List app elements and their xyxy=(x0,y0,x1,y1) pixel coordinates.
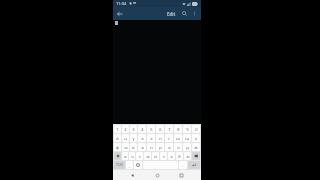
staticText: 7 xyxy=(168,127,171,132)
staticText: 2 xyxy=(124,127,127,132)
staticText: ь xyxy=(170,154,173,159)
staticText: ю xyxy=(186,154,190,159)
staticText: н xyxy=(159,136,162,141)
button[interactable]: б xyxy=(176,152,183,160)
staticText: т xyxy=(163,154,165,159)
button[interactable]: 3 xyxy=(130,125,137,133)
staticText: ы xyxy=(124,145,128,150)
button[interactable]: л xyxy=(174,143,182,151)
button[interactable]: к xyxy=(138,134,146,142)
staticText: м xyxy=(146,154,150,159)
button[interactable]: Edit xyxy=(165,10,178,18)
button[interactable]: 0 xyxy=(192,125,200,133)
button[interactable]: ф xyxy=(114,143,121,151)
button[interactable]: ж xyxy=(192,143,200,151)
staticText: ш xyxy=(176,136,180,141)
button[interactable]: Enter xyxy=(188,161,200,169)
button[interactable]: 2 xyxy=(122,125,129,133)
button[interactable]: 9 xyxy=(183,125,191,133)
staticText: ч xyxy=(131,154,134,159)
button[interactable]: 6 xyxy=(156,125,164,133)
staticText: 5 xyxy=(150,127,153,132)
button[interactable]: Comma xyxy=(126,161,133,169)
staticText: я xyxy=(124,154,127,159)
button[interactable]: Period xyxy=(179,161,187,169)
staticText: а xyxy=(141,145,144,150)
button[interactable]: т xyxy=(160,152,167,160)
button[interactable]: р xyxy=(156,143,164,151)
button[interactable]: ?123 xyxy=(114,161,125,169)
staticText: 4 xyxy=(141,127,144,132)
staticText: д xyxy=(186,145,189,150)
staticText: у xyxy=(132,136,135,141)
staticText: п xyxy=(150,145,153,150)
button[interactable]: Recent apps xyxy=(177,171,186,180)
button[interactable]: с xyxy=(136,152,143,160)
staticText: , xyxy=(129,163,131,168)
button[interactable]: й xyxy=(114,134,121,142)
button[interactable]: з xyxy=(192,134,200,142)
staticText: 8 xyxy=(177,127,180,132)
button[interactable]: Back xyxy=(115,9,125,19)
button[interactable]: Shift xyxy=(114,152,121,160)
staticText: е xyxy=(150,136,153,141)
button[interactable]: 7 xyxy=(165,125,173,133)
staticText: р xyxy=(159,145,162,150)
button[interactable]: а xyxy=(138,143,146,151)
staticText: 9 xyxy=(186,127,189,132)
button[interactable]: о xyxy=(165,143,173,151)
staticText: ц xyxy=(124,136,127,141)
staticText: к xyxy=(141,136,144,141)
staticText: й xyxy=(116,136,119,141)
staticText: 6 xyxy=(159,127,162,132)
staticText: щ xyxy=(185,136,189,141)
button[interactable]: Back xyxy=(128,171,137,180)
staticText: л xyxy=(177,145,180,150)
button[interactable]: Language xyxy=(134,161,142,169)
button[interactable]: я xyxy=(122,152,128,160)
button[interactable]: More options xyxy=(190,9,199,18)
button[interactable]: 5 xyxy=(147,125,155,133)
staticText: г xyxy=(168,136,170,141)
button[interactable]: Backspace xyxy=(192,152,200,160)
staticText: 0 xyxy=(195,127,198,132)
button[interactable]: ь xyxy=(168,152,175,160)
button[interactable]: ч xyxy=(129,152,135,160)
staticText: в xyxy=(132,145,135,150)
button[interactable]: н xyxy=(156,134,164,142)
button[interactable]: у xyxy=(130,134,137,142)
button[interactable]: и xyxy=(152,152,159,160)
staticText: 1 xyxy=(116,127,119,132)
button[interactable]: 8 xyxy=(174,125,182,133)
button[interactable]: м xyxy=(144,152,151,160)
staticText: ?123 xyxy=(116,163,123,167)
staticText: и xyxy=(154,154,157,159)
button[interactable]: в xyxy=(130,143,137,151)
staticText: ф xyxy=(116,145,119,150)
staticText: с xyxy=(139,154,141,159)
staticText: о xyxy=(168,145,171,150)
staticText: ж xyxy=(194,145,198,150)
staticText: 11:04 xyxy=(116,1,127,6)
button[interactable]: 4 xyxy=(138,125,146,133)
button[interactable]: 1 xyxy=(114,125,121,133)
button[interactable]: ю xyxy=(184,152,191,160)
button[interactable]: г xyxy=(165,134,173,142)
staticText: 3 xyxy=(132,127,135,132)
staticText: Edit xyxy=(167,11,176,17)
staticText: . xyxy=(182,163,184,168)
button[interactable]: Home xyxy=(153,171,162,180)
button[interactable]: д xyxy=(183,143,191,151)
button[interactable]: Search xyxy=(180,9,189,18)
button[interactable]: ц xyxy=(122,134,129,142)
button[interactable]: п xyxy=(147,143,155,151)
staticText: б xyxy=(178,154,181,159)
button[interactable]: ш xyxy=(174,134,182,142)
button[interactable]: щ xyxy=(183,134,191,142)
button[interactable]: е xyxy=(147,134,155,142)
button[interactable]: ы xyxy=(122,143,129,151)
staticText: з xyxy=(195,136,197,141)
